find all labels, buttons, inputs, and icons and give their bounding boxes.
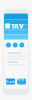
button[interactable]: Feature [6, 42, 11, 47]
staticText: TAV [11, 21, 24, 30]
button[interactable]: Feature [13, 42, 18, 47]
staticText: More [17, 76, 26, 87]
staticText: Book [6, 79, 15, 84]
button[interactable]: More [17, 78, 26, 84]
button[interactable]: Book [6, 78, 15, 84]
button[interactable]: Feature [19, 42, 24, 47]
